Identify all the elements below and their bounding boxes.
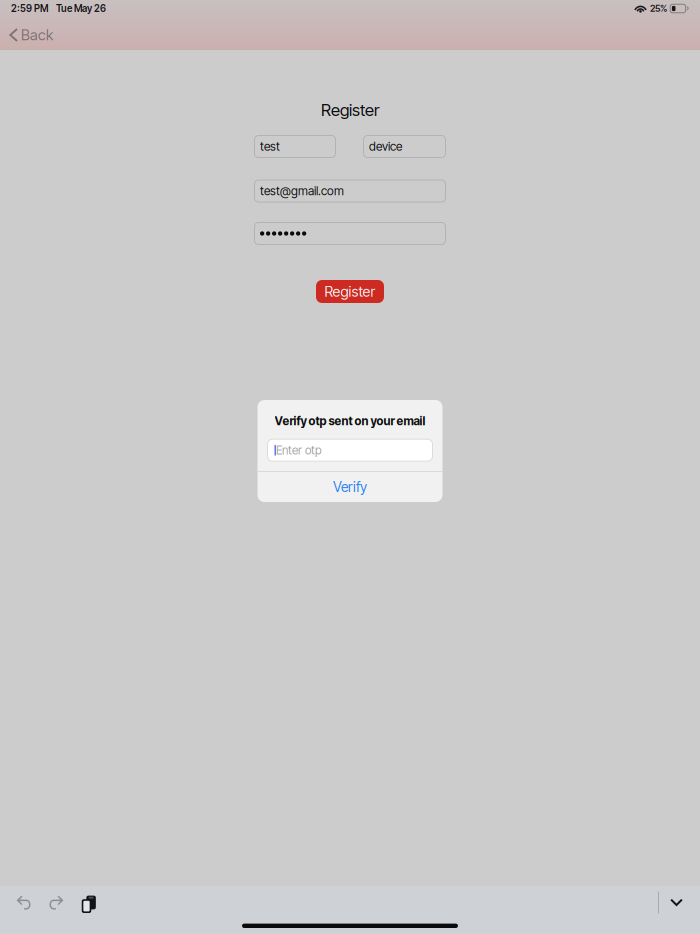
staticText: device (369, 139, 402, 154)
staticText: 25% (650, 3, 667, 14)
staticText: Tue May 26 (56, 3, 106, 14)
button[interactable]: Paste (71, 886, 102, 919)
staticText: Register (321, 100, 379, 120)
button[interactable]: Verify (257, 472, 442, 502)
staticText: Verify otp sent on your email (274, 414, 425, 428)
staticText: 2:59 PM (11, 3, 48, 14)
staticText: test (260, 139, 280, 154)
staticText: Back (21, 26, 53, 44)
button[interactable]: Undo (9, 886, 40, 919)
button[interactable]: Hide keyboard (659, 891, 694, 913)
button[interactable]: Redo (40, 886, 71, 919)
button[interactable]: Back (0, 15, 61, 51)
staticText: test@gmail.com (260, 184, 344, 198)
button[interactable]: Register (316, 280, 384, 303)
staticText: Verify (333, 478, 367, 495)
staticText: Register (324, 283, 375, 300)
staticText: Enter otp (276, 443, 322, 457)
